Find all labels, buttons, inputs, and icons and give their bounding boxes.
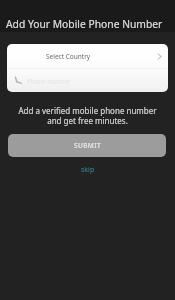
staticText: Add Your Mobile Phone Number	[6, 17, 163, 31]
button[interactable]: skip	[73, 162, 103, 178]
button[interactable]: Select Country	[7, 44, 168, 68]
button[interactable]: Phone	[7, 69, 168, 92]
staticText: SUBMIT	[74, 141, 101, 150]
other: Open country chooser	[157, 53, 162, 60]
other: Phone	[14, 76, 23, 85]
staticText: Select Country	[46, 52, 91, 61]
staticText: Add a verified mobile phone number and g…	[0, 105, 175, 126]
staticText: Phone number	[27, 77, 71, 85]
button[interactable]: SUBMIT	[8, 134, 166, 157]
